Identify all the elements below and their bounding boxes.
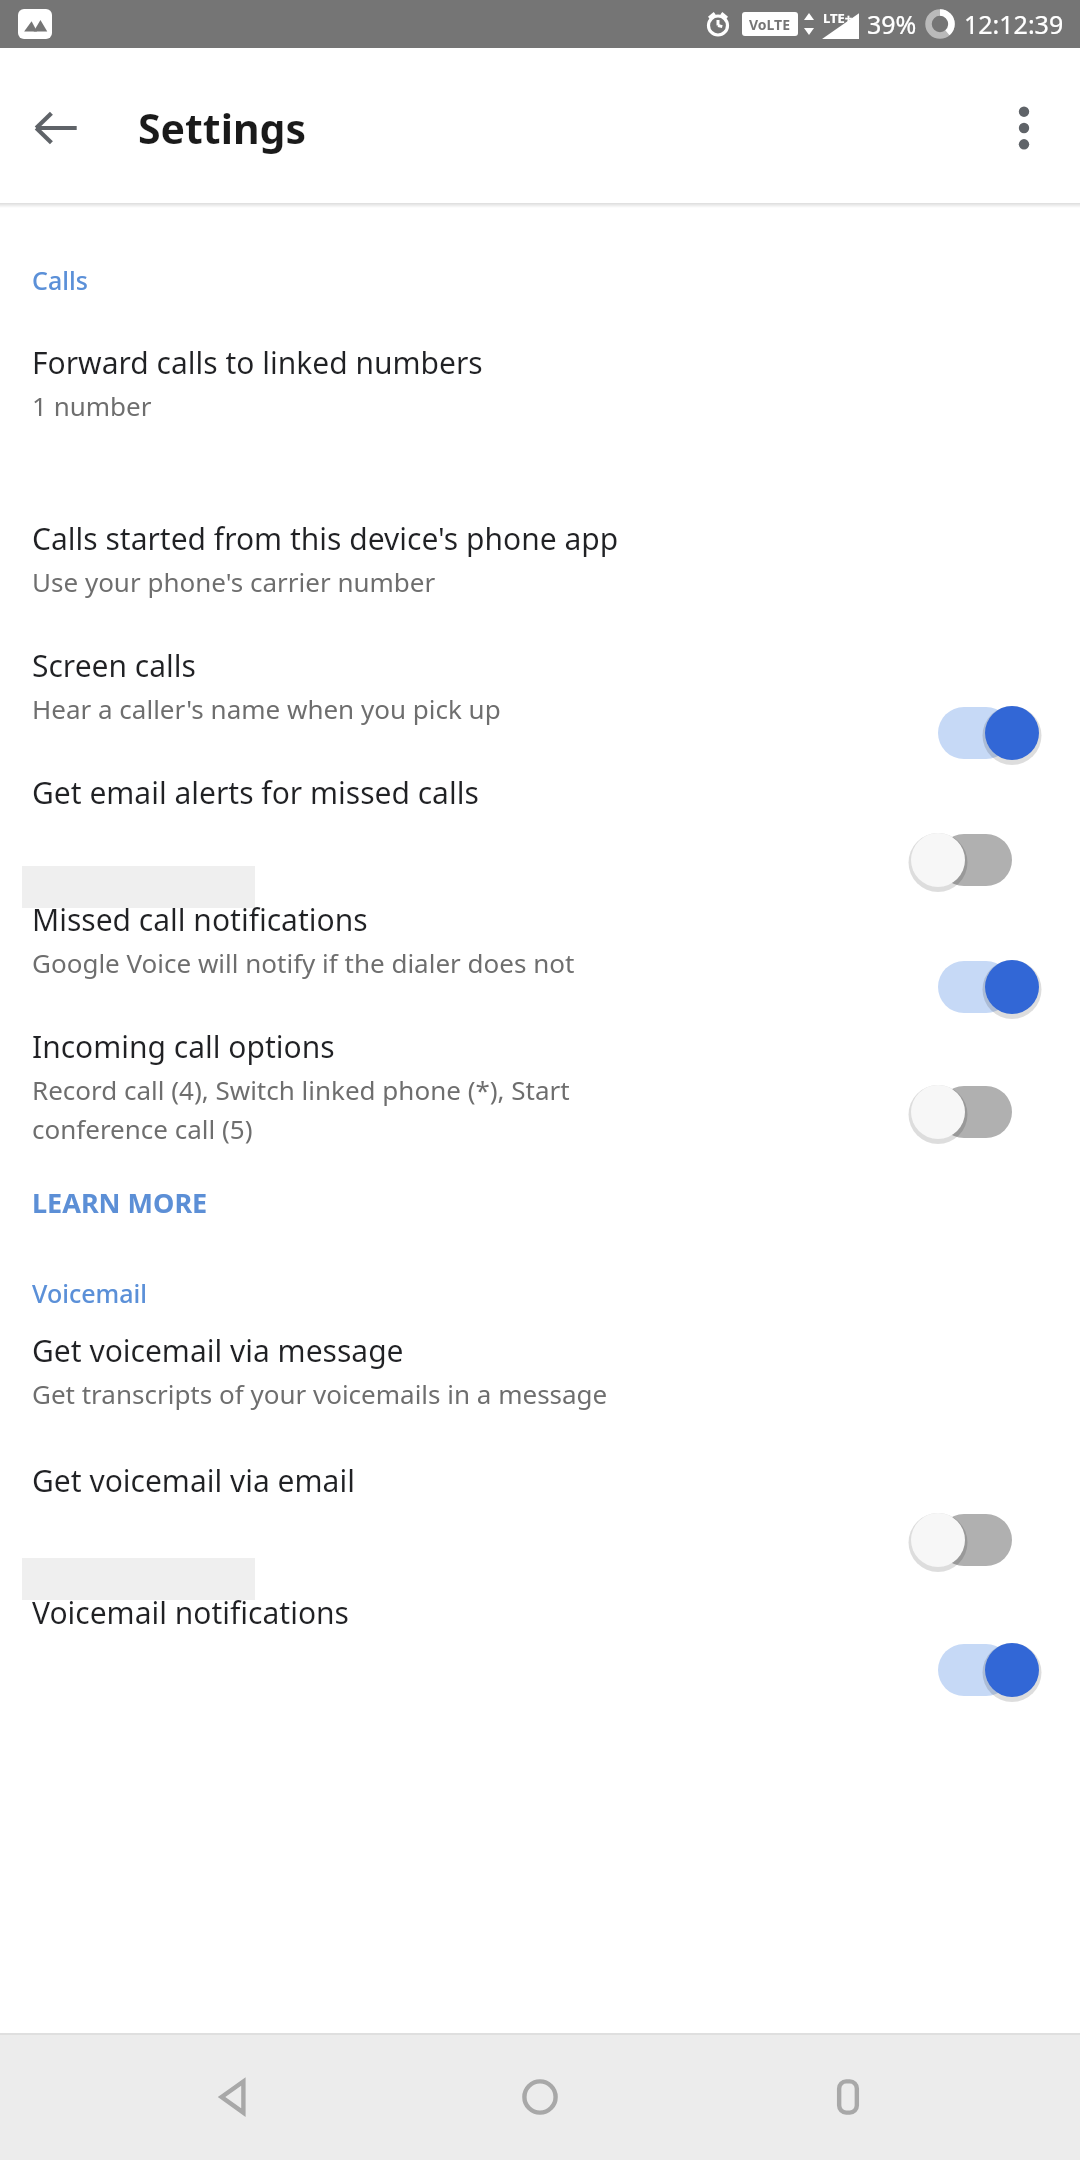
button[interactable]: Toggle off [920, 1066, 1040, 1158]
staticText: Settings [138, 100, 307, 156]
staticText: Voicemail [32, 1276, 148, 1310]
button[interactable]: Toggle on [920, 941, 1040, 1033]
staticText: Use your phone's carrier number [32, 564, 912, 599]
staticText: Calls [32, 263, 88, 297]
staticText: Get transcripts of your voicemails in a … [32, 1376, 912, 1411]
button[interactable]: More options [982, 86, 1066, 170]
staticText: Google Voice will notify if the dialer d… [32, 945, 912, 980]
button[interactable]: Toggle off [920, 1494, 1040, 1586]
staticText: Voicemail notifications [32, 1592, 912, 1633]
button[interactable]: Back [158, 2033, 308, 2160]
button[interactable] [0, 492, 1080, 610]
button[interactable]: LEARN MORE [28, 1178, 212, 1227]
staticText: Forward calls to linked numbers [32, 342, 912, 383]
staticText: VoLTE [749, 15, 791, 34]
staticText: Screen calls [32, 645, 912, 686]
button[interactable]: Recents [773, 2033, 923, 2160]
button[interactable] [0, 1566, 1080, 1662]
button[interactable]: Home [465, 2033, 615, 2160]
staticText: Hear a caller's name when you pick up [32, 691, 912, 726]
staticText: Calls started from this device's phone a… [32, 518, 912, 559]
button[interactable]: Toggle on [920, 1624, 1040, 1716]
staticText: Incoming call options [32, 1026, 912, 1067]
button[interactable]: Toggle on [920, 687, 1040, 779]
button[interactable]: Back [14, 86, 98, 170]
staticText: Get voicemail via message [32, 1330, 912, 1371]
staticText: Missed call notifications [32, 899, 912, 940]
button[interactable] [0, 746, 1080, 864]
staticText: 1 number [32, 388, 912, 423]
button[interactable] [0, 316, 1080, 434]
button[interactable]: Toggle off [920, 814, 1040, 906]
button[interactable] [0, 619, 1080, 737]
button[interactable] [0, 1434, 1080, 1552]
staticText: Get email alerts for missed calls [32, 772, 912, 813]
staticText: 12:12:39 [964, 7, 1064, 41]
button[interactable] [0, 1000, 1080, 1150]
staticText: 39% [867, 7, 917, 41]
button[interactable] [0, 873, 1080, 991]
button[interactable] [0, 1304, 1080, 1422]
staticText: LEARN MORE [32, 1184, 208, 1221]
staticText: Record call (4), Switch linked phone (*)… [32, 1072, 912, 1147]
staticText: Get voicemail via email [32, 1460, 912, 1501]
staticText: LTE+ [823, 9, 853, 27]
